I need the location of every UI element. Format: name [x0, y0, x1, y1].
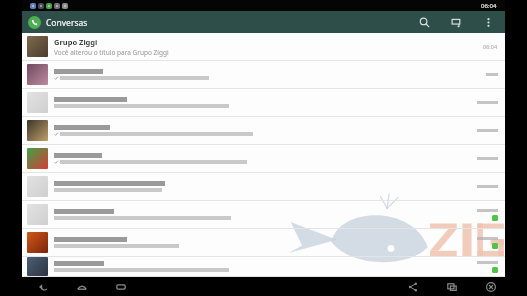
- staticText: Conversas: [46, 17, 88, 29]
- button[interactable]: [22, 173, 505, 201]
- button[interactable]: [22, 89, 505, 117]
- button[interactable]: Home: [73, 278, 90, 295]
- staticText: 06:04: [481, 2, 497, 10]
- button[interactable]: New chat: [447, 13, 465, 31]
- button[interactable]: Search: [415, 13, 433, 31]
- button[interactable]: Grupo Ziggi: [22, 33, 505, 61]
- button[interactable]: [22, 61, 505, 89]
- button[interactable]: Screenshot: [443, 278, 460, 295]
- button[interactable]: More options: [479, 13, 497, 31]
- button[interactable]: [22, 145, 505, 173]
- button[interactable]: Recent apps: [112, 278, 129, 295]
- button[interactable]: [22, 201, 505, 229]
- button[interactable]: Share: [404, 278, 421, 295]
- button[interactable]: Close: [482, 278, 499, 295]
- button[interactable]: [22, 229, 505, 257]
- staticText: 06:04: [483, 43, 498, 50]
- button[interactable]: Back: [34, 278, 51, 295]
- button[interactable]: [22, 257, 505, 277]
- button[interactable]: [22, 117, 505, 145]
- staticText: Você alterou o título para Grupo Ziggi: [54, 48, 169, 57]
- staticText: Grupo Ziggi: [54, 37, 98, 47]
